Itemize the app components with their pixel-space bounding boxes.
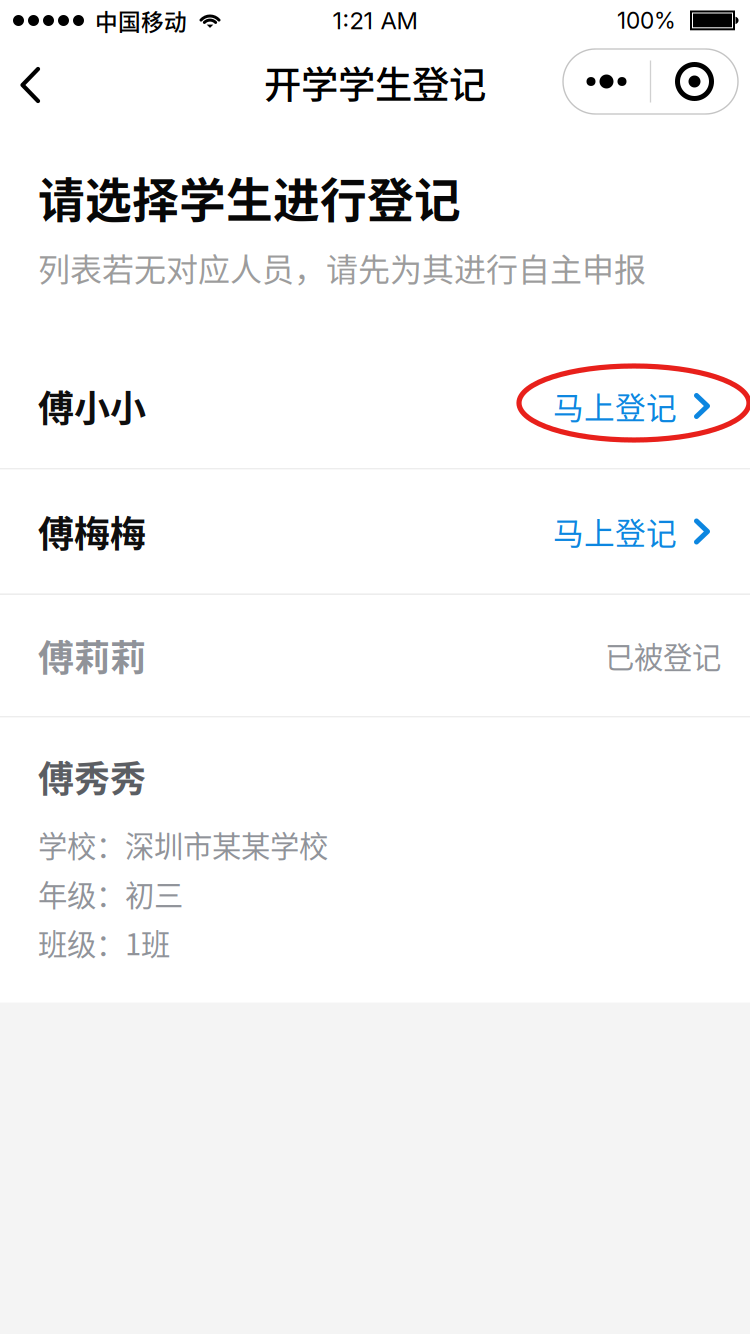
staticText: 100% (617, 7, 676, 34)
button[interactable]: 傅小小 (0, 344, 750, 468)
button[interactable]: 更多 (563, 41, 750, 127)
staticText: 傅小小 (38, 380, 146, 432)
button[interactable]: 返回 (0, 41, 71, 127)
staticText: 班级：1班 (38, 921, 170, 964)
staticText: 傅莉莉 (38, 629, 146, 681)
staticText: 学校：深圳市某某学校 (38, 823, 328, 866)
staticText: 马上登记 (553, 384, 677, 428)
button[interactable]: 傅梅梅 (0, 469, 750, 593)
staticText: 已被登记 (605, 634, 721, 677)
staticText: 年级：初三 (38, 872, 183, 915)
staticText: 中国移动 (95, 4, 187, 37)
staticText: 傅秀秀 (38, 750, 146, 802)
staticText: 傅梅梅 (38, 505, 146, 557)
staticText: 开学学生登记 (264, 55, 486, 110)
staticText: 请选择学生进行登记 (38, 163, 461, 231)
staticText: 列表若无对应人员，请先为其进行自主申报 (38, 244, 646, 291)
staticText: 马上登记 (553, 509, 677, 554)
staticText: 1:21 AM (332, 6, 417, 35)
